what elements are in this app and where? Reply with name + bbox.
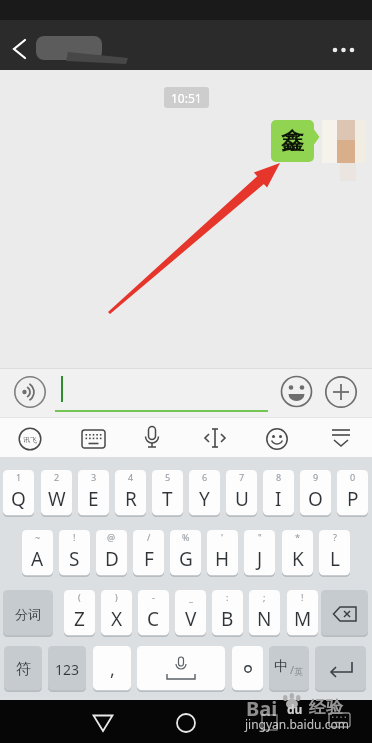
staticText: )	[115, 591, 118, 603]
staticText: !	[73, 531, 76, 543]
button[interactable]	[92, 714, 114, 733]
button[interactable]: )	[101, 590, 132, 637]
button[interactable]: @	[96, 530, 127, 577]
button[interactable]: 2	[41, 470, 72, 517]
button[interactable]	[203, 427, 227, 451]
staticText: R	[125, 486, 137, 512]
button[interactable]	[315, 646, 366, 692]
button[interactable]: 3	[78, 470, 109, 517]
staticText: A	[31, 546, 44, 572]
button[interactable]: 4	[115, 470, 146, 517]
button[interactable]: '	[207, 530, 238, 577]
button[interactable]	[176, 713, 196, 733]
button[interactable]: 123	[48, 646, 86, 692]
button[interactable]	[14, 376, 46, 408]
staticText: jingyan.baidu.com	[245, 716, 349, 732]
button[interactable]: ,	[93, 646, 131, 692]
staticText: I	[275, 486, 282, 512]
button[interactable]: ;	[249, 590, 280, 637]
button[interactable]: *	[282, 530, 313, 577]
button[interactable]	[321, 590, 368, 637]
staticText: 10:51	[171, 90, 202, 106]
button[interactable]	[8, 36, 32, 62]
button[interactable]: 讯飞	[18, 427, 42, 451]
staticText: 中	[274, 658, 288, 676]
staticText: '	[221, 531, 224, 543]
button[interactable]: 7	[226, 470, 257, 517]
button[interactable]: ~	[22, 530, 53, 577]
staticText: (	[78, 591, 81, 603]
button[interactable]: (	[64, 590, 95, 637]
staticText: 6	[202, 471, 208, 483]
button[interactable]: :	[212, 590, 243, 637]
staticText: E	[88, 486, 99, 512]
button[interactable]: ?	[319, 530, 350, 577]
button[interactable]: "	[244, 530, 275, 577]
staticText: Q	[11, 486, 26, 512]
button[interactable]: 8	[263, 470, 294, 517]
staticText: 1	[16, 471, 22, 483]
staticText: 经验	[309, 697, 343, 718]
staticText: 英	[294, 666, 303, 677]
staticText: :	[226, 591, 229, 603]
button[interactable]: !	[59, 530, 90, 577]
button[interactable]: %	[170, 530, 201, 577]
button[interactable]: _	[175, 590, 206, 637]
staticText: ~	[35, 531, 41, 543]
button[interactable]: 分词	[3, 590, 53, 637]
button[interactable]	[52, 372, 272, 414]
staticText: %	[182, 531, 190, 543]
staticText: F	[144, 546, 154, 572]
staticText: C	[147, 606, 160, 632]
staticText: T	[162, 486, 173, 512]
button[interactable]	[322, 120, 366, 163]
staticText: Z	[74, 606, 85, 632]
button[interactable]: 0	[337, 470, 368, 517]
staticText: S	[69, 546, 80, 572]
staticText: /	[290, 662, 295, 677]
button[interactable]: 5	[152, 470, 183, 517]
button[interactable]: /	[133, 530, 164, 577]
staticText: /	[147, 531, 151, 543]
staticText: @	[107, 531, 116, 543]
staticText: *	[295, 531, 300, 543]
staticText: 123	[55, 660, 80, 679]
staticText: K	[292, 546, 304, 572]
button[interactable]: 中	[269, 646, 309, 692]
staticText: J	[257, 546, 263, 572]
staticText: !	[301, 591, 304, 603]
button[interactable]	[330, 38, 358, 62]
button[interactable]	[232, 646, 263, 692]
button[interactable]	[140, 425, 164, 453]
button[interactable]: !	[287, 590, 318, 637]
staticText: 9	[313, 471, 319, 483]
staticText: N	[257, 606, 272, 632]
button[interactable]	[137, 646, 225, 692]
staticText: 鑫	[281, 127, 304, 156]
staticText: P	[347, 486, 359, 512]
staticText: 8	[276, 471, 282, 483]
button[interactable]	[82, 427, 106, 451]
staticText: 讯飞	[23, 435, 37, 444]
staticText: B	[221, 606, 234, 632]
staticText: O	[308, 486, 323, 512]
button[interactable]: 1	[3, 470, 34, 517]
button[interactable]: 6	[189, 470, 220, 517]
staticText: Bai	[246, 695, 278, 722]
staticText: Y	[199, 486, 210, 512]
button[interactable]	[325, 376, 357, 408]
button[interactable]	[266, 428, 288, 450]
button[interactable]: 鑫	[271, 120, 314, 162]
button[interactable]: 符	[4, 646, 42, 692]
staticText: 4	[128, 471, 134, 483]
staticText: D	[105, 546, 119, 572]
staticText: U	[235, 486, 249, 512]
button[interactable]	[328, 712, 352, 732]
button[interactable]	[330, 427, 352, 451]
staticText: ;	[263, 591, 266, 603]
button[interactable]	[281, 376, 312, 407]
button[interactable]: -	[138, 590, 169, 637]
staticText: -	[152, 591, 155, 603]
staticText: M	[294, 606, 312, 632]
button[interactable]: 9	[300, 470, 331, 517]
